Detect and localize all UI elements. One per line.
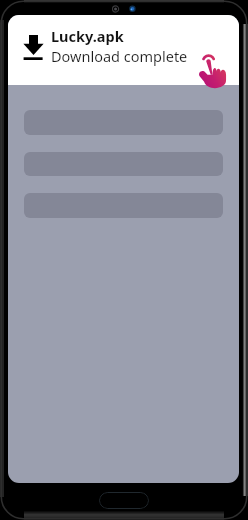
other: Tap — [194, 42, 232, 90]
button[interactable]: Lucky.apk — [8, 15, 239, 85]
staticText: Download complete — [51, 46, 188, 66]
staticText: Lucky.apk — [51, 26, 124, 46]
button[interactable]: Home — [99, 492, 149, 509]
